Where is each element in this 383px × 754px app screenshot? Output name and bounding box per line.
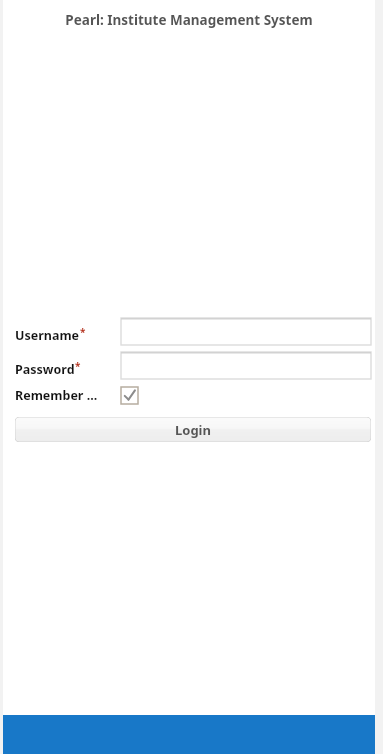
staticText: * [75,359,81,373]
button[interactable]: Text input [121,352,371,379]
staticText: * [80,325,86,339]
button[interactable]: Login [15,417,371,442]
staticText: Pearl: Institute Management System [3,11,375,29]
staticText: Remember ... [15,387,121,404]
button[interactable]: Remember me checkbox [121,387,138,404]
staticText: Password [15,361,75,378]
staticText: Login [175,421,211,439]
staticText: Username [15,327,80,344]
button[interactable]: Text input [121,318,371,345]
